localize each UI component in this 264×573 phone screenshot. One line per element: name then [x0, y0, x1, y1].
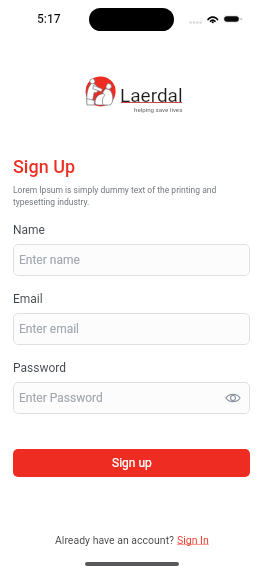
- button[interactable]: Enter email: [13, 313, 250, 345]
- staticText: Email: [13, 292, 43, 306]
- staticText: Lorem Ipsum is simply dummy text of the …: [13, 185, 225, 207]
- button[interactable]: Enter Password: [13, 382, 250, 414]
- button[interactable]: Show password: [225, 390, 241, 406]
- staticText: Laerdal: [120, 84, 183, 106]
- staticText: Enter Password: [19, 391, 103, 405]
- staticText: Password: [13, 361, 67, 375]
- staticText: helping save lives: [134, 106, 183, 113]
- staticText: 5:17: [37, 12, 61, 26]
- staticText: Name: [13, 223, 45, 237]
- staticText: Sign Up: [13, 156, 76, 177]
- staticText: Already have an account?: [55, 534, 177, 546]
- staticText: Enter email: [19, 322, 80, 336]
- button[interactable]: Enter name: [13, 244, 250, 276]
- staticText: Sign up: [112, 456, 152, 470]
- staticText: Enter name: [19, 253, 80, 267]
- staticText: Sign In: [177, 534, 209, 546]
- button[interactable]: Sign In: [177, 534, 209, 546]
- button[interactable]: Sign up: [13, 449, 250, 477]
